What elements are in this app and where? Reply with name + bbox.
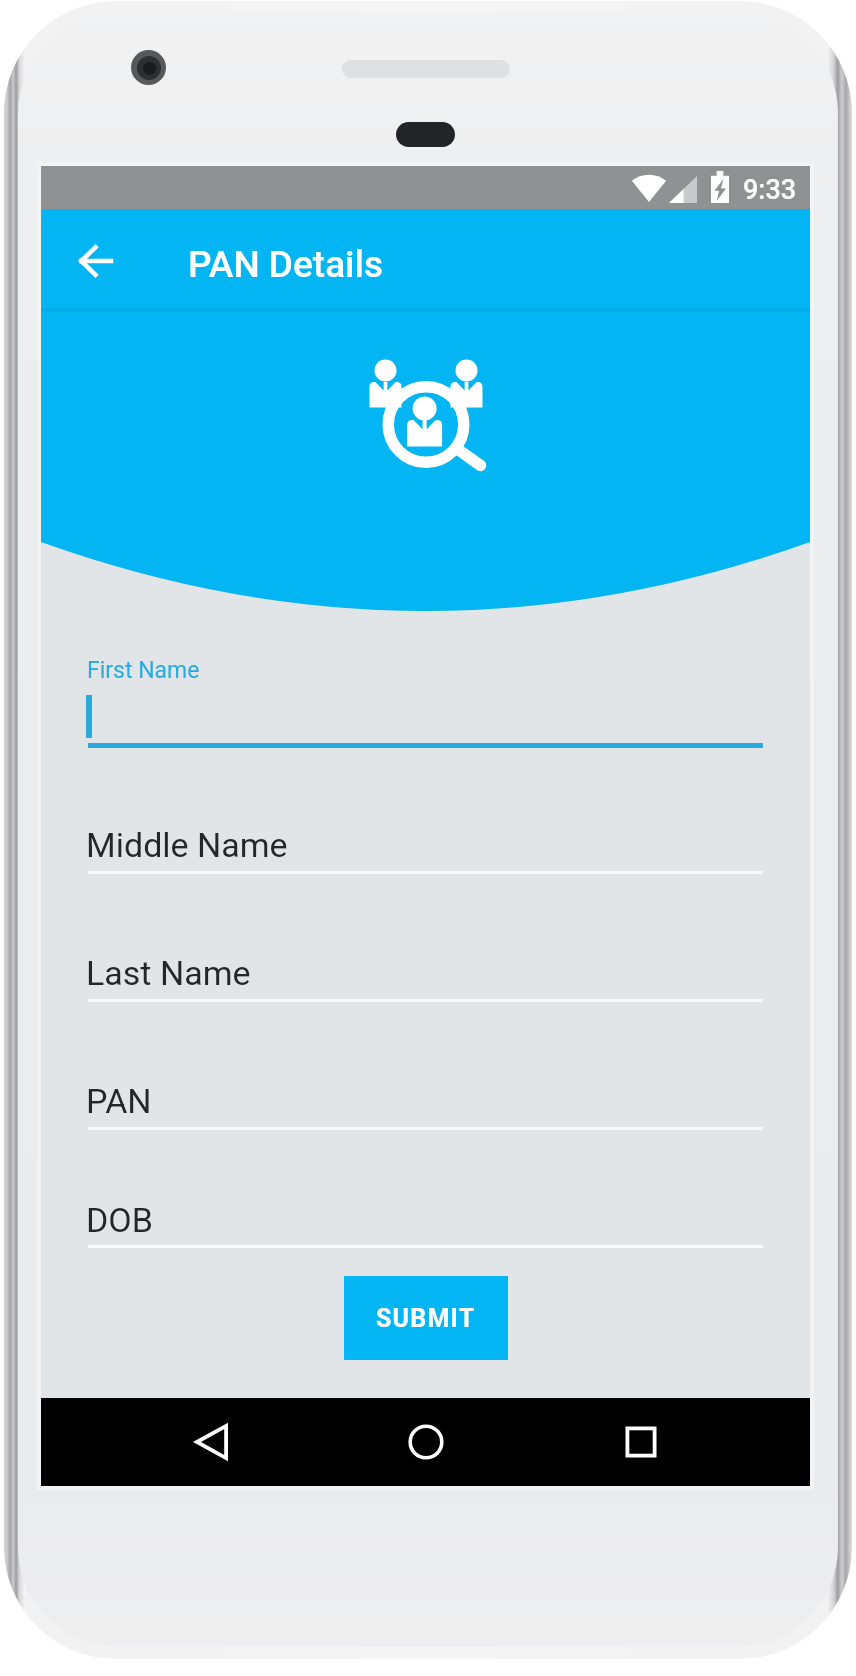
staticText: SUBMIT [376, 1304, 476, 1333]
button[interactable]: Recents [605, 1406, 677, 1478]
staticText: PAN [86, 1081, 152, 1121]
staticText: Last Name [86, 953, 251, 993]
staticText: PAN Details [188, 243, 383, 286]
staticText: First Name [87, 657, 200, 684]
staticText: DOB [86, 1200, 153, 1240]
staticText: 9:33 [743, 174, 797, 206]
button[interactable]: Home [390, 1406, 462, 1478]
button[interactable]: Back [64, 230, 126, 292]
button[interactable]: Back [175, 1406, 247, 1478]
button[interactable]: SUBMIT [344, 1276, 508, 1360]
staticText: Middle Name [86, 825, 288, 865]
